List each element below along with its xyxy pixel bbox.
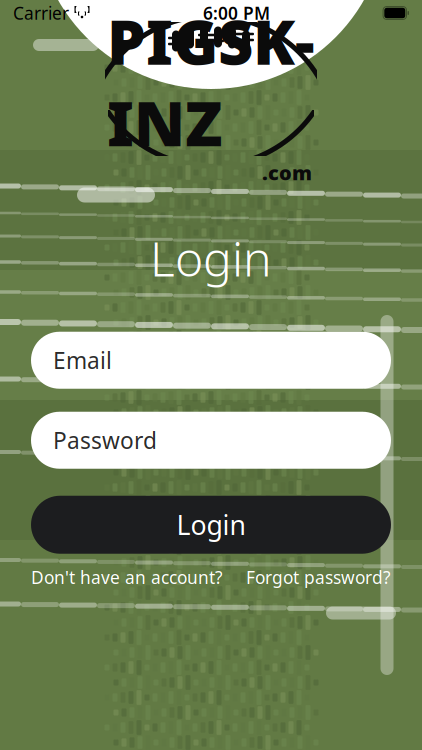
staticText: Email — [53, 345, 112, 375]
staticText: Login — [176, 507, 245, 542]
staticText: Password — [53, 425, 157, 455]
staticText: PIGSKINZ — [107, 0, 315, 163]
button[interactable]: Forgot password? — [246, 566, 391, 589]
button[interactable]: Email — [31, 332, 391, 389]
button[interactable]: Don't have an account? — [31, 566, 223, 589]
staticText: .com — [262, 159, 312, 186]
staticText: Don't have an account? — [31, 566, 223, 589]
staticText: Carrier — [13, 1, 69, 24]
staticText: Login — [150, 226, 272, 290]
staticText: 6:00 PM — [203, 1, 270, 24]
button[interactable]: Login — [31, 496, 391, 554]
button[interactable]: Password — [31, 412, 391, 469]
staticText: Forgot password? — [246, 566, 391, 589]
